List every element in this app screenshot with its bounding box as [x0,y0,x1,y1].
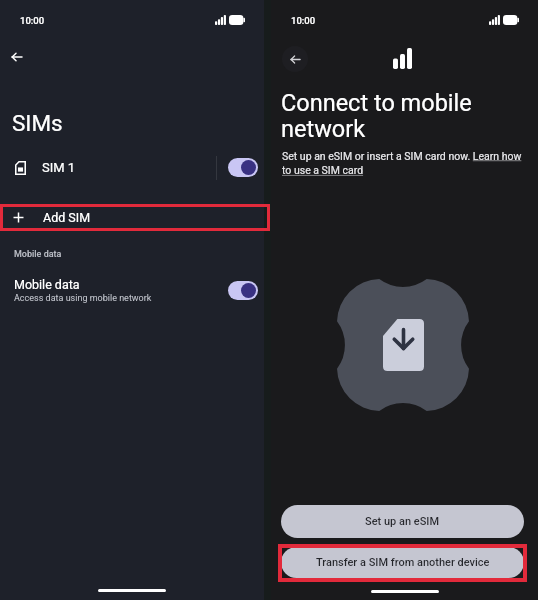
button[interactable]: Toggle [228,158,258,177]
staticText: Mobile data [14,249,62,260]
staticText: Access data using mobile network [14,293,152,304]
button[interactable]: Set up an eSIM or insert a SIM card now.… [282,150,529,177]
button[interactable]: Back [3,43,31,71]
button[interactable]: SIM 1 [0,146,264,189]
staticText: Connect to mobile network [281,89,491,143]
button[interactable]: Toggle [228,281,258,300]
staticText: Add SIM [43,210,91,225]
button[interactable]: Back [282,46,308,72]
staticText: Mobile data [14,277,80,292]
staticText: Set up an eSIM [365,515,440,528]
staticText: 10:00 [20,15,45,26]
button[interactable]: Transfer a SIM from another device [281,547,524,578]
staticText: SIMs [12,110,63,136]
staticText: SIM 1 [42,160,76,175]
staticText: 10:00 [291,15,316,26]
other: Signal strength [393,48,412,69]
button[interactable]: Set up an eSIM [281,505,524,538]
staticText: Transfer a SIM from another device [316,556,490,569]
button[interactable]: Add SIM [0,204,264,230]
button[interactable]: Mobile data [0,270,264,310]
